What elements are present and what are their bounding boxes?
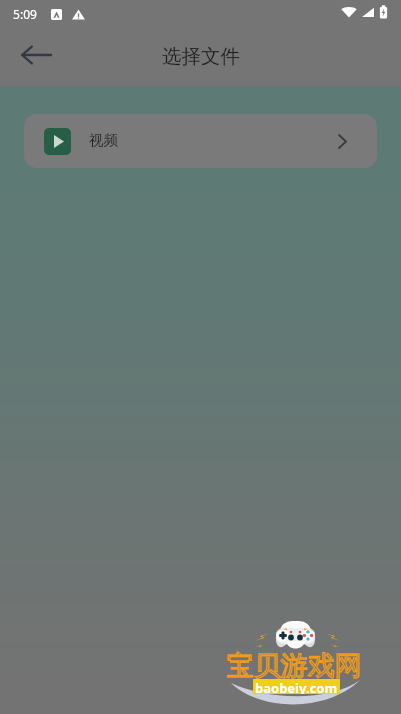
staticText: 选择文件 <box>162 44 240 69</box>
button[interactable]: Back <box>14 33 58 77</box>
button[interactable]: 视频 <box>24 114 377 168</box>
staticText: 5:09 <box>13 6 37 22</box>
staticText: 宝贝游戏网 <box>227 649 362 683</box>
staticText: baobeiy.com <box>255 679 338 694</box>
staticText: 视频 <box>89 131 118 149</box>
